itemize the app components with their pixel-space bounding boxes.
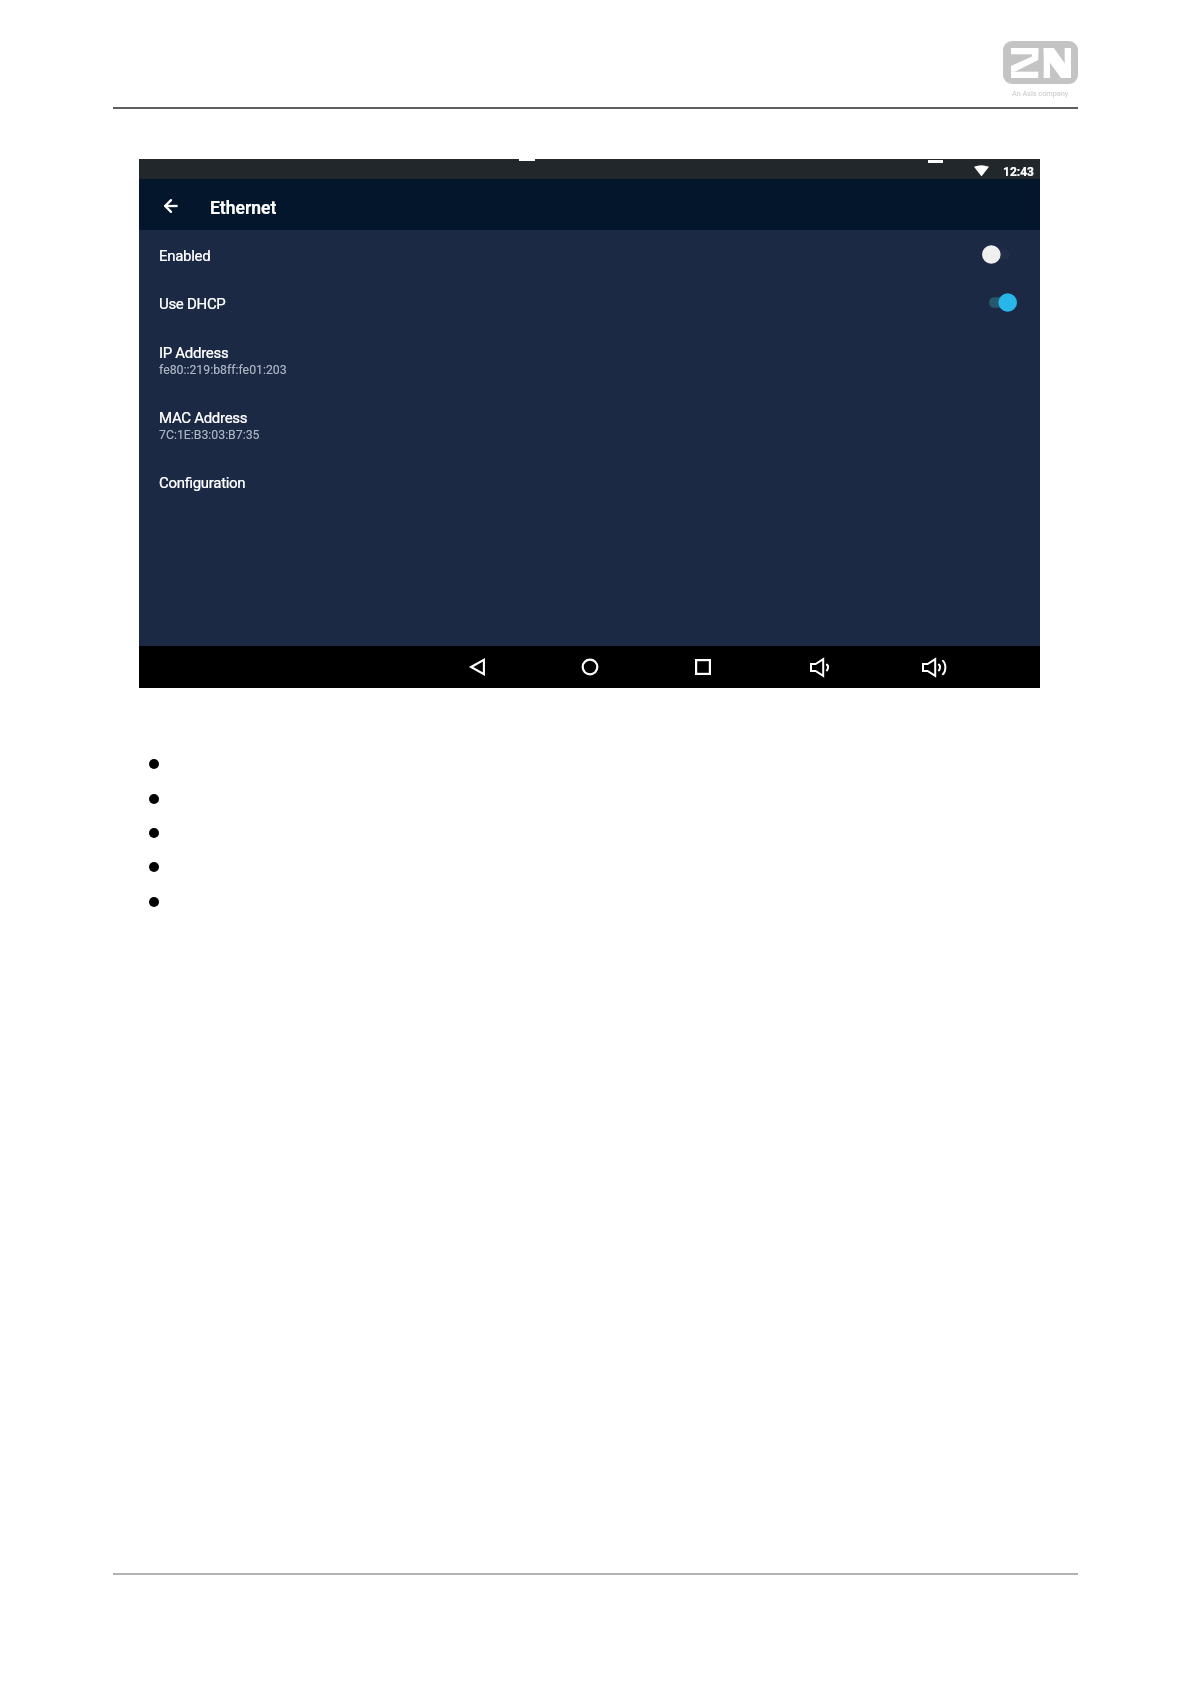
button[interactable]: Configuration (139, 467, 1040, 503)
staticText: MAC Address (159, 409, 248, 427)
staticText: Configuration (159, 474, 246, 492)
staticText: Use DHCP (159, 295, 226, 313)
staticText: An Axis company (1012, 89, 1069, 98)
button[interactable]: Recent apps (682, 646, 724, 688)
button[interactable]: MAC Address (139, 402, 1040, 442)
staticText: IP Address (159, 344, 229, 362)
staticText: Enabled (159, 247, 211, 265)
staticText: 7C:1E:B3:03:B7:35 (159, 428, 260, 442)
staticText: fe80::219:b8ff:fe01:203 (159, 363, 287, 377)
button[interactable]: Volume up (913, 646, 955, 688)
button[interactable]: Volume down (799, 646, 841, 688)
button[interactable]: Home (569, 646, 611, 688)
button[interactable]: IP Address (139, 337, 1040, 377)
button[interactable]: Back (155, 190, 187, 222)
button[interactable]: Use DHCP (139, 289, 1040, 325)
staticText: Ethernet (210, 198, 277, 219)
button[interactable]: Back (456, 646, 498, 688)
staticText: 12:43 (1003, 165, 1034, 179)
button[interactable]: Enabled (139, 240, 1040, 276)
